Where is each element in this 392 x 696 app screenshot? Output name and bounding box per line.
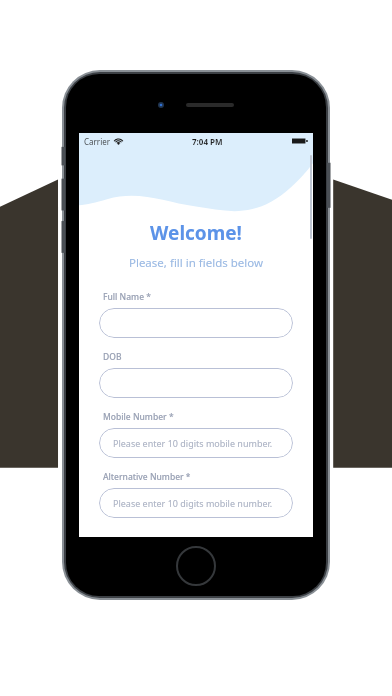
staticText: Full Name * bbox=[103, 291, 151, 303]
staticText: Please, fill in fields below bbox=[79, 255, 313, 271]
staticText: 7:04 PM bbox=[192, 136, 223, 147]
staticText: DOB bbox=[103, 351, 122, 363]
staticText: Mobile Number * bbox=[103, 411, 174, 423]
staticText: Please enter 10 digits mobile number. bbox=[113, 437, 273, 449]
staticText: Welcome! bbox=[79, 220, 313, 246]
button[interactable]: Please enter 10 digits mobile number. bbox=[99, 488, 293, 518]
button[interactable]: Home bbox=[176, 546, 216, 586]
button[interactable]: Please enter 10 digits mobile number. bbox=[99, 428, 293, 458]
button[interactable] bbox=[99, 308, 293, 338]
staticText: Please enter 10 digits mobile number. bbox=[113, 497, 273, 509]
staticText: Alternative Number * bbox=[103, 471, 191, 483]
button[interactable] bbox=[99, 368, 293, 398]
staticText: Carrier bbox=[84, 136, 111, 147]
